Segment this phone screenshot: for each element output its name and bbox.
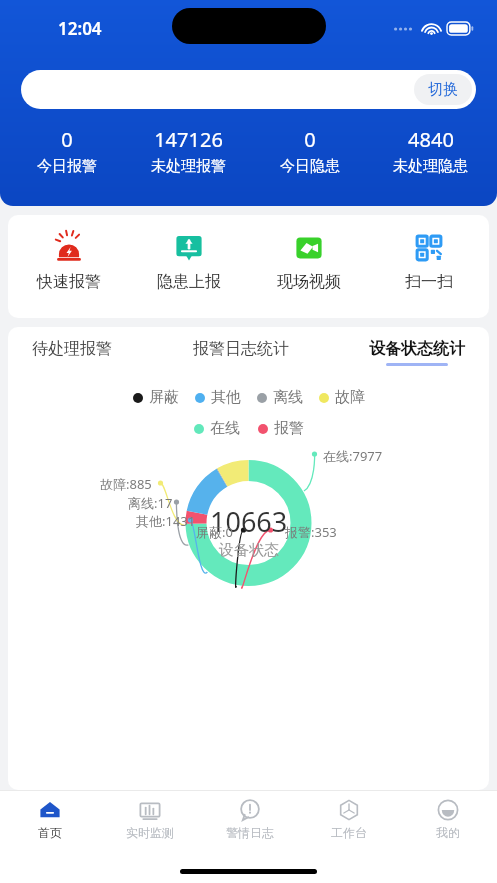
staticText: 扫一扫 [405, 272, 453, 292]
staticText: 今日隐患 [280, 157, 340, 176]
button[interactable]: 隐患上报 [129, 230, 249, 318]
staticText: 屏蔽 [149, 388, 179, 407]
staticText: 未处理隐患 [393, 157, 468, 176]
button[interactable]: 147126 [128, 126, 249, 176]
staticText: 0 [61, 126, 73, 153]
button[interactable]: 4840 [370, 126, 491, 176]
staticText: 我的 [436, 825, 460, 840]
button[interactable]: 切换 [414, 74, 472, 105]
staticText: 设备状态统计 [369, 339, 465, 359]
staticText: 在线 [210, 419, 240, 438]
staticText: 隐患上报 [157, 272, 221, 292]
button[interactable]: 切换 [21, 70, 476, 109]
staticText: 在线:7977 [323, 447, 383, 465]
staticText: 离线:17 [128, 494, 173, 512]
staticText: 12:04 [58, 17, 102, 40]
button[interactable]: 设备状态统计 [369, 339, 465, 366]
button[interactable]: 扫一扫 [369, 230, 489, 318]
button[interactable]: 现场视频 [249, 230, 369, 318]
staticText: 未处理报警 [151, 157, 226, 176]
staticText: 报警 [274, 419, 304, 438]
staticText: 其他:1431 [136, 512, 196, 530]
staticText: 0 [304, 126, 316, 153]
staticText: 实时监测 [126, 825, 174, 840]
staticText: 其他 [211, 388, 241, 407]
staticText: 故障:885 [100, 475, 152, 493]
button[interactable]: 待处理报警 [32, 339, 112, 363]
staticText: 147126 [154, 126, 223, 153]
staticText: 现场视频 [277, 272, 341, 292]
button[interactable]: 报警日志统计 [193, 339, 289, 363]
staticText: 待处理报警 [32, 339, 112, 359]
staticText: 故障 [335, 388, 365, 407]
staticText: 报警:353 [285, 523, 337, 541]
staticText: 4840 [408, 126, 454, 153]
staticText: 离线 [273, 388, 303, 407]
button[interactable]: 工作台 [299, 791, 398, 847]
button[interactable]: 实时监测 [100, 791, 200, 847]
staticText: 设备状态 [219, 541, 279, 560]
staticText: 快速报警 [37, 272, 101, 292]
staticText: 今日报警 [37, 157, 97, 176]
button[interactable]: 0 [249, 126, 370, 176]
button[interactable]: 我的 [398, 791, 497, 847]
button[interactable]: 首页 [0, 791, 100, 847]
button[interactable]: 0 [6, 126, 128, 176]
staticText: 屏蔽:0 [196, 523, 233, 541]
staticText: 10663 [210, 503, 288, 540]
staticText: 警情日志 [226, 825, 274, 840]
staticText: 报警日志统计 [193, 339, 289, 359]
button[interactable]: 快速报警 [8, 230, 129, 318]
button[interactable]: 警情日志 [200, 791, 299, 847]
staticText: 工作台 [331, 825, 367, 840]
staticText: 首页 [38, 825, 62, 840]
staticText: 切换 [428, 80, 458, 99]
